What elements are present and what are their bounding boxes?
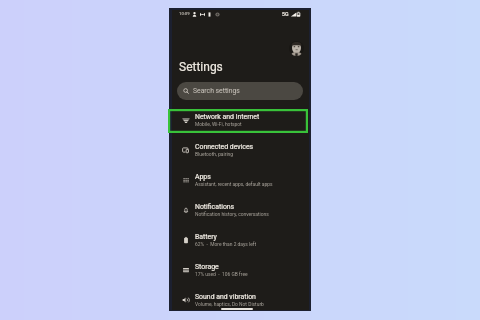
staticText: Storage — [195, 263, 219, 271]
staticText: Sound and vibration — [195, 293, 256, 301]
staticText: 10:09 — [179, 11, 190, 16]
staticText: Battery — [195, 233, 217, 241]
button[interactable]: Storage — [170, 255, 310, 285]
button[interactable]: Battery — [170, 225, 310, 255]
button[interactable]: Apps — [170, 165, 310, 195]
staticText: Connected devices — [195, 143, 254, 151]
button[interactable]: Notifications — [170, 195, 310, 225]
button[interactable]: Network and Internet — [170, 105, 310, 135]
button[interactable]: Account — [289, 41, 304, 56]
staticText: Apps — [195, 173, 211, 181]
button[interactable]: Sound and vibration — [170, 285, 310, 315]
staticText: 17% used - 106 GB free — [195, 271, 248, 277]
staticText: 62% - More than 2 days left — [195, 241, 257, 247]
staticText: Mobile, Wi-Fi, hotspot — [195, 121, 242, 127]
staticText: 5G — [282, 11, 289, 17]
staticText: Network and Internet — [195, 113, 260, 121]
staticText: Assistant, recent apps, default apps — [195, 181, 273, 187]
staticText: Bluetooth, pairing — [195, 151, 234, 157]
staticText: Settings — [179, 60, 223, 74]
button[interactable]: Search settings — [177, 82, 303, 100]
staticText: Volume, haptics, Do Not Disturb — [195, 301, 264, 307]
staticText: Notifications — [195, 203, 235, 211]
button[interactable]: Connected devices — [170, 135, 310, 165]
staticText: Search settings — [193, 87, 240, 95]
staticText: Notification history, conversations — [195, 211, 269, 217]
